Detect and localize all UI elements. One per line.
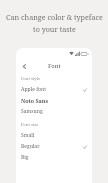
button[interactable]: Samsung (16, 106, 92, 117)
staticText: Noto Sans (21, 97, 48, 104)
button[interactable]: Back (18, 60, 30, 72)
staticText: Font style (21, 76, 41, 82)
staticText: Apple font (21, 86, 46, 93)
staticText: Font size (21, 122, 39, 128)
button[interactable]: Regular (16, 141, 92, 152)
staticText: Samsung (21, 108, 43, 115)
button[interactable]: Apple font (16, 84, 92, 95)
staticText: Big (21, 154, 29, 161)
staticText: Can change color & typeface (6, 12, 103, 22)
button[interactable]: Noto Sans (16, 95, 92, 106)
button[interactable]: Big (16, 152, 92, 163)
staticText: to your taste (33, 24, 76, 34)
button[interactable]: Small (16, 130, 92, 141)
staticText: Regular (21, 143, 40, 150)
staticText: Font (48, 62, 61, 70)
staticText: Small (21, 132, 35, 139)
